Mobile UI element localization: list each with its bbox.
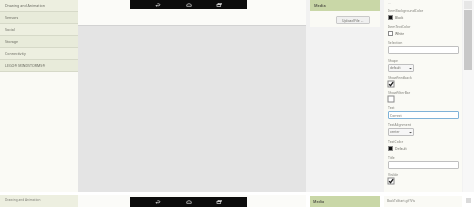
button[interactable]: LEGO® MINDSTORMS® xyxy=(0,60,78,71)
staticText: ItemBackgroundColor xyxy=(388,8,424,13)
button[interactable]: Checked xyxy=(388,81,394,87)
staticText: ItemTextColor xyxy=(388,24,411,29)
staticText: Title xyxy=(388,155,395,160)
button[interactable]: Drawing and Animation xyxy=(0,0,78,11)
button[interactable]: Checked xyxy=(388,178,394,184)
button[interactable]: Home xyxy=(186,199,192,205)
button[interactable]: Home xyxy=(186,2,192,8)
staticText: BackToStart.gif?Vis xyxy=(387,199,416,203)
staticText: Default xyxy=(395,146,407,151)
button[interactable]: Media xyxy=(310,0,380,11)
button[interactable] xyxy=(388,161,459,169)
staticText: Drawing and Animation xyxy=(5,198,41,202)
button[interactable]: Recent apps xyxy=(216,2,222,8)
button[interactable]: Social xyxy=(0,24,78,35)
button[interactable] xyxy=(388,46,459,54)
staticText: Shape xyxy=(388,58,398,63)
staticText: Sensors xyxy=(5,15,19,20)
button[interactable]: Unchecked xyxy=(388,96,394,102)
button[interactable]: default xyxy=(388,64,414,72)
staticText: Upload File ... xyxy=(342,18,364,23)
staticText: Media xyxy=(314,3,326,8)
button[interactable]: Correct xyxy=(388,111,459,119)
staticText: Connectivity xyxy=(5,51,26,56)
staticText: LEGO® MINDSTORMS® xyxy=(5,63,46,68)
staticText: Storage xyxy=(5,39,19,44)
button[interactable]: Back xyxy=(155,199,161,205)
button[interactable]: White xyxy=(388,30,459,37)
button[interactable]: Black xyxy=(388,14,459,21)
staticText: TextAlignment xyxy=(388,122,412,127)
button[interactable]: Recent apps xyxy=(216,199,222,205)
button[interactable]: Default xyxy=(388,145,459,152)
staticText: White xyxy=(395,31,405,36)
staticText: ... xyxy=(388,1,391,5)
staticText: Black xyxy=(395,15,404,20)
staticText: TextColor xyxy=(388,139,404,144)
button[interactable]: center xyxy=(388,128,414,136)
staticText: Drawing and Animation xyxy=(5,3,45,8)
staticText: ShowFeedback xyxy=(388,75,412,80)
staticText: default xyxy=(390,66,401,70)
staticText: Correct xyxy=(390,113,402,118)
staticText: Text xyxy=(388,105,395,110)
button[interactable]: Back xyxy=(155,2,161,8)
staticText: center xyxy=(390,130,400,134)
button[interactable]: Connectivity xyxy=(0,48,78,59)
staticText: Selection xyxy=(388,40,403,45)
staticText: Social xyxy=(5,27,15,32)
button[interactable]: Storage xyxy=(0,36,78,47)
staticText: ShowFilterBar xyxy=(388,90,411,95)
button[interactable]: Sensors xyxy=(0,12,78,23)
staticText: Visible xyxy=(388,172,399,177)
button[interactable]: Upload File ... xyxy=(336,16,370,24)
button[interactable]: System navigation bar xyxy=(130,0,247,9)
staticText: Media xyxy=(313,199,325,204)
